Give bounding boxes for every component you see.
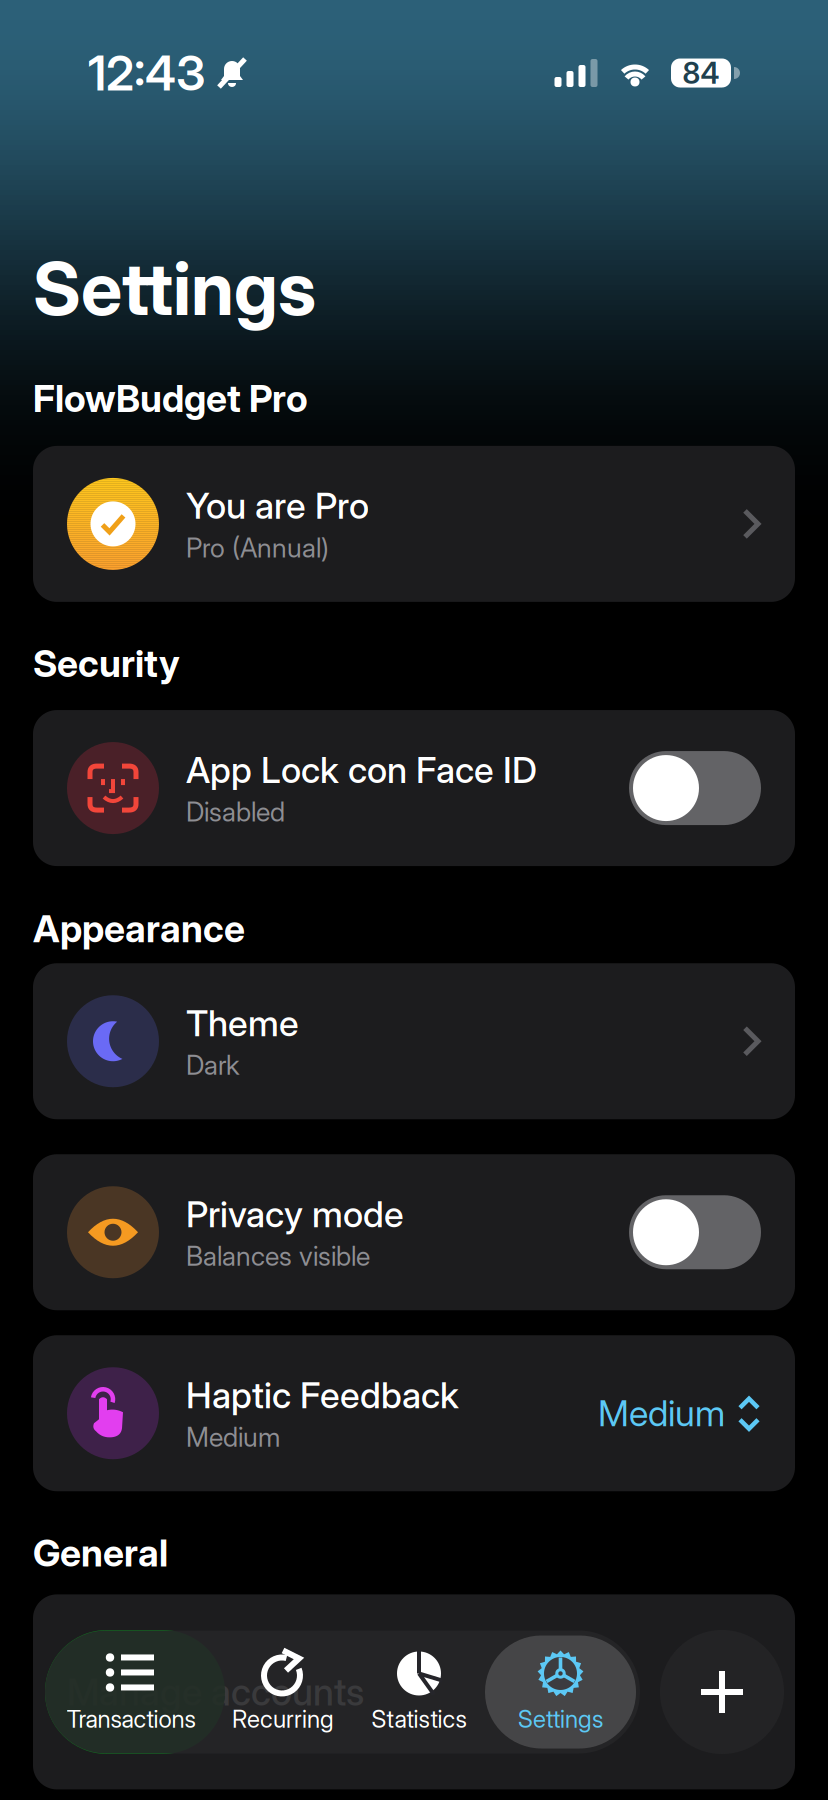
- staticText: Balances visible: [186, 1240, 370, 1272]
- button[interactable]: Add: [660, 1630, 784, 1754]
- button[interactable]: You are Pro: [0, 446, 828, 602]
- button[interactable]: Haptic Feedback: [0, 1335, 828, 1491]
- staticText: Medium: [186, 1421, 280, 1453]
- staticText: 12:43: [88, 44, 205, 102]
- button[interactable]: Statistics: [353, 1635, 485, 1748]
- staticText: Manage accounts: [67, 1669, 364, 1714]
- staticText: Settings: [518, 1704, 603, 1733]
- button[interactable]: Recurring: [213, 1635, 353, 1748]
- staticText: 84: [682, 55, 719, 91]
- staticText: Theme: [186, 1001, 299, 1045]
- staticText: Settings: [33, 244, 316, 333]
- staticText: Dark: [186, 1049, 240, 1081]
- staticText: Privacy mode: [186, 1192, 404, 1236]
- staticText: You are Pro: [186, 484, 369, 528]
- staticText: Appearance: [33, 906, 245, 951]
- staticText: Transactions: [66, 1704, 195, 1733]
- staticText: Disabled: [186, 796, 285, 828]
- staticText: Medium: [598, 1391, 725, 1435]
- button[interactable]: Settings: [485, 1635, 636, 1748]
- staticText: Pro (Annual): [186, 531, 329, 564]
- staticText: App Lock con Face ID: [186, 748, 537, 792]
- staticText: Haptic Feedback: [186, 1373, 459, 1417]
- staticText: Recurring: [232, 1704, 334, 1733]
- staticText: Statistics: [371, 1704, 466, 1733]
- button[interactable]: App Lock con Face ID: [0, 710, 828, 866]
- button[interactable]: Transactions: [49, 1635, 213, 1748]
- staticText: FlowBudget Pro: [33, 376, 308, 421]
- button[interactable]: Privacy mode: [0, 1154, 828, 1310]
- button[interactable]: Theme: [0, 963, 828, 1119]
- staticText: General: [33, 1530, 168, 1575]
- staticText: Security: [33, 641, 180, 686]
